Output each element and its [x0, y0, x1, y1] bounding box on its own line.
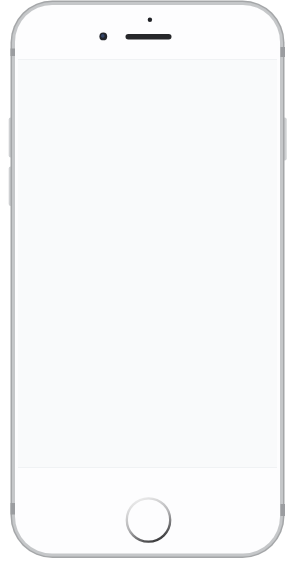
- button[interactable]: [126, 497, 171, 542]
